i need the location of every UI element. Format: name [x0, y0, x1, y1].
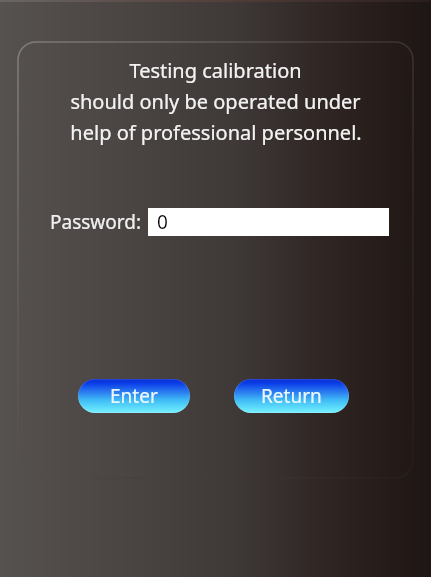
- staticText: Enter: [110, 383, 158, 409]
- button[interactable]: Enter: [78, 379, 190, 413]
- staticText: should only be operated under: [70, 88, 361, 115]
- staticText: Password:: [50, 209, 142, 235]
- button[interactable]: 0: [148, 208, 389, 236]
- button[interactable]: Return: [234, 379, 349, 413]
- staticText: Testing calibration: [129, 57, 302, 84]
- staticText: Return: [261, 383, 322, 409]
- staticText: 0: [157, 209, 168, 235]
- staticText: help of professional personnel.: [70, 119, 362, 146]
